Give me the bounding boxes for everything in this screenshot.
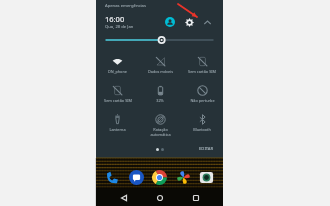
staticText: Qua, 28 de Jan	[105, 24, 134, 30]
staticText: EDITAR	[199, 146, 214, 152]
staticText: Bluetooth	[193, 127, 211, 132]
button[interactable]: Câmera	[197, 168, 216, 187]
staticText: Sem cartão SIM	[188, 69, 216, 74]
staticText: 32%	[156, 98, 164, 103]
button[interactable]: EDITAR	[199, 146, 214, 152]
button[interactable]: Recolher	[201, 16, 214, 29]
button[interactable]: DN_phone	[96, 52, 139, 81]
button[interactable]: Brilho	[106, 33, 213, 47]
button[interactable]: Usuário	[163, 15, 177, 29]
button[interactable]: Dados móveis	[139, 52, 181, 81]
button[interactable]: Mensagens	[127, 168, 146, 187]
button[interactable]: Configurações	[182, 15, 196, 29]
button[interactable]: Sem cartão SIM	[181, 52, 223, 81]
button[interactable]: Não perturbe	[181, 81, 223, 110]
staticText: DN_phone	[108, 69, 127, 74]
button[interactable]: Bluetooth	[181, 110, 223, 139]
button[interactable]: Fotos	[174, 168, 193, 187]
staticText: Lanterna	[109, 127, 126, 132]
button[interactable]: Início	[151, 189, 168, 206]
button[interactable]: Recentes	[187, 189, 204, 206]
button[interactable]: Telefone	[103, 168, 122, 187]
staticText: Rotação automática	[150, 127, 171, 137]
button[interactable]: 32%	[139, 81, 181, 110]
button[interactable]: Rotação automática	[139, 110, 181, 139]
staticText: 16:00	[105, 14, 125, 24]
staticText: Apenas emergências	[105, 3, 146, 9]
button[interactable]: Voltar	[115, 189, 132, 206]
button[interactable]: Lanterna	[96, 110, 139, 139]
staticText: Sem cartão SIM	[104, 98, 132, 103]
staticText: Não perturbe	[190, 98, 215, 103]
staticText: Dados móveis	[148, 69, 173, 74]
button[interactable]: Chrome	[150, 168, 169, 187]
button[interactable]: Sem cartão SIM	[96, 81, 139, 110]
